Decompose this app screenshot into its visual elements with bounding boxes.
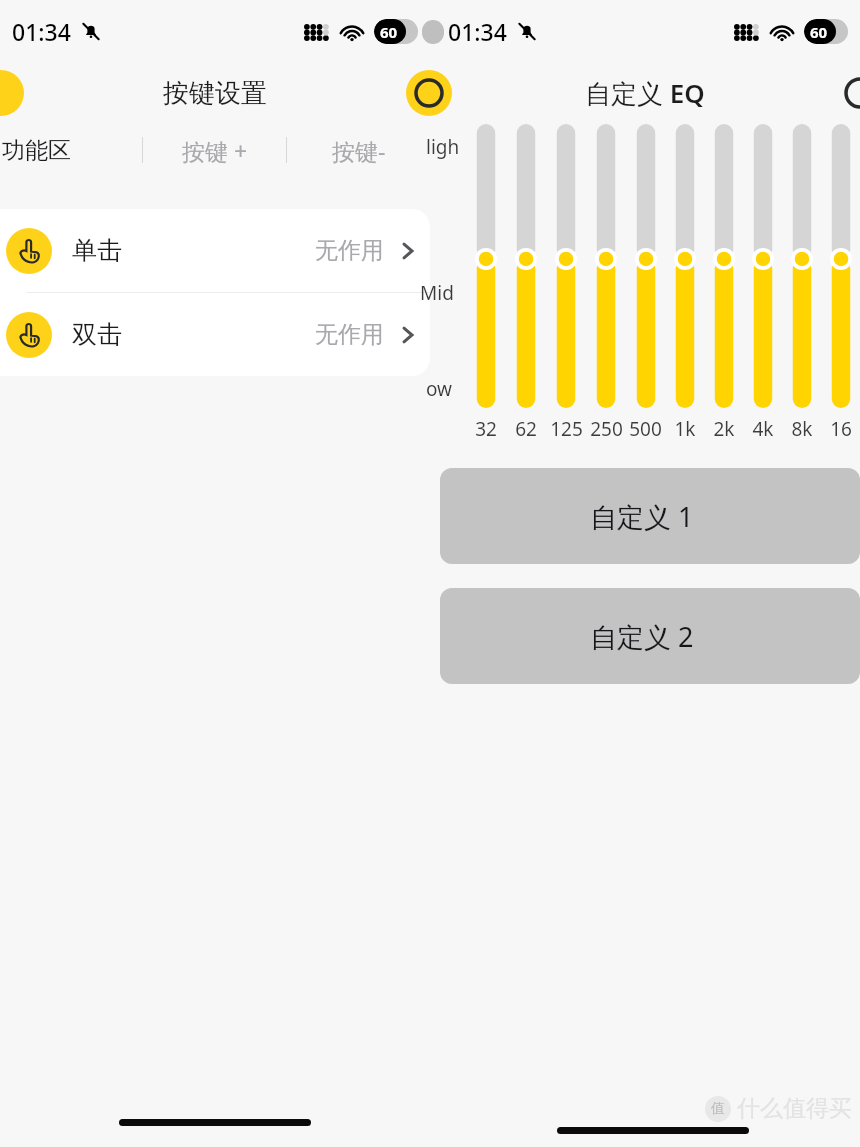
staticText: 32 [475,416,497,442]
staticText: 01:34 [12,16,71,47]
staticText: 值 [711,1100,725,1118]
staticText: 16 [830,416,852,442]
button[interactable]: 按键- [287,124,430,176]
staticText: 60 [380,22,398,42]
button[interactable]: 按键 + [143,124,286,176]
button[interactable]: Back [0,70,24,116]
staticText: 60 [810,22,828,42]
staticText: 自定义 1 [590,498,694,535]
button[interactable]: EQ band 62 [515,124,537,408]
staticText: 125 [550,416,583,442]
button[interactable]: EQ band 4k [752,124,774,408]
staticText: 4k [752,416,774,442]
button[interactable]: EQ band 2k [713,124,735,408]
staticText: 250 [590,416,623,442]
button[interactable]: 双击 [0,293,430,376]
staticText: 双击 [72,319,122,350]
staticText: 按键- [332,135,386,166]
staticText: 01:34 [448,16,507,47]
staticText: 8k [791,416,813,442]
button[interactable]: 单击 [0,209,430,292]
staticText: 无作用 [315,320,384,349]
button[interactable]: Help [844,77,860,109]
staticText: ligh [426,134,460,160]
staticText: 什么值得买 [737,1094,852,1123]
staticText: 按键 + [182,135,248,166]
button[interactable]: EQ band 500 [635,124,657,408]
button[interactable]: 自定义 1 [440,468,860,564]
staticText: 按键设置 [163,77,267,110]
button[interactable]: EQ band 1k [674,124,696,408]
button[interactable]: EQ band 125 [555,124,577,408]
staticText: 2k [713,416,735,442]
button[interactable]: 功能区 [0,124,142,176]
staticText: ow [426,376,453,402]
button[interactable]: Help [412,77,444,109]
button[interactable]: EQ band 250 [595,124,617,408]
staticText: 62 [515,416,537,442]
button[interactable]: EQ band 32 [475,124,497,408]
staticText: 1k [674,416,696,442]
button[interactable]: EQ band 8k [791,124,813,408]
staticText: 自定义 EQ [585,75,705,111]
button[interactable]: Back [406,70,452,116]
button[interactable]: EQ band 16 [830,124,852,408]
button[interactable]: 自定义 2 [440,588,860,684]
staticText: 功能区 [2,136,71,165]
staticText: 单击 [72,235,122,266]
staticText: 无作用 [315,236,384,265]
staticText: Mid [420,280,454,306]
staticText: 500 [629,416,662,442]
staticText: 自定义 2 [590,618,694,655]
